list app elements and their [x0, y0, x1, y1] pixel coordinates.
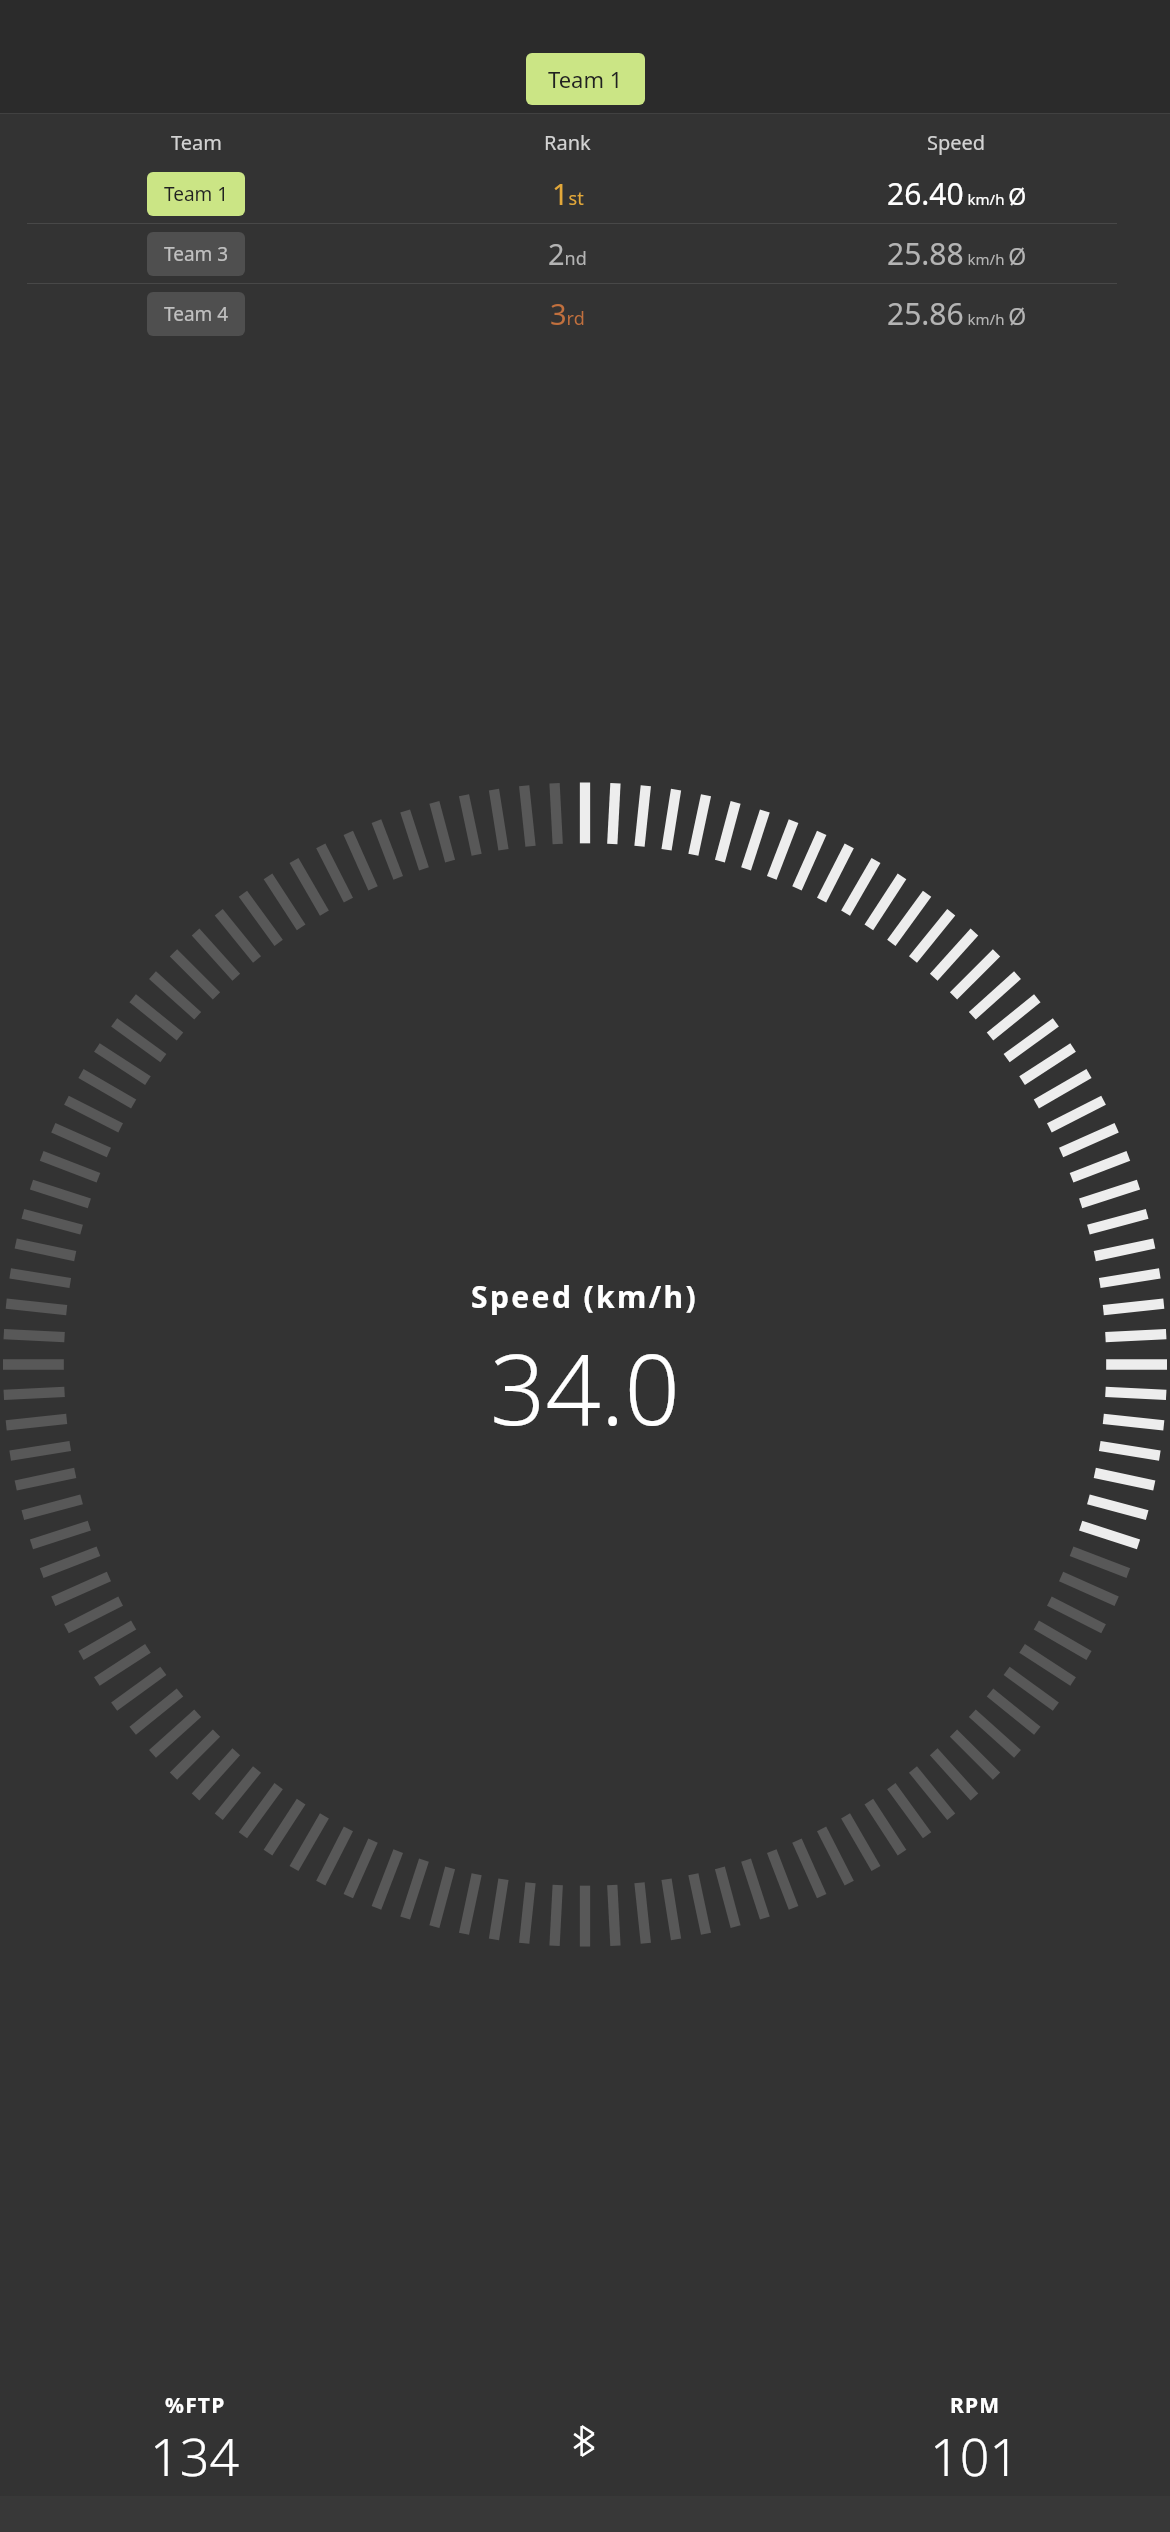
staticText: 101 [930, 2420, 1020, 2491]
staticText: 25.88 km/h Ø [887, 233, 1027, 274]
button[interactable]: Team 1 [0, 164, 1170, 223]
staticText: Rank [544, 129, 591, 156]
staticText: Team [171, 129, 222, 156]
button[interactable]: Team 3 [0, 224, 1170, 283]
staticText: 34.0 [490, 1321, 680, 1453]
button[interactable]: %FTP [0, 2391, 390, 2491]
staticText: Team 3 [164, 241, 229, 267]
staticText: Team 1 [164, 181, 229, 207]
staticText: 26.40 km/h Ø [887, 173, 1027, 214]
staticText: 2nd [548, 234, 587, 273]
staticText: Speed [927, 129, 986, 156]
staticText: RPM [950, 2391, 1001, 2420]
staticText: Speed (km/h) [471, 1276, 699, 1317]
staticText: 3rd [550, 294, 585, 333]
staticText: 1st [552, 174, 584, 213]
staticText: Team 4 [164, 301, 229, 327]
staticText: Team 1 [548, 64, 623, 94]
button[interactable]: RPM [780, 2391, 1170, 2491]
button[interactable]: Team 1 [526, 53, 645, 105]
button[interactable]: Team 4 [0, 284, 1170, 343]
staticText: 134 [150, 2420, 240, 2491]
staticText: %FTP [165, 2391, 226, 2420]
button[interactable]: Bluetooth connected [568, 2424, 602, 2458]
staticText: 25.86 km/h Ø [887, 293, 1027, 334]
